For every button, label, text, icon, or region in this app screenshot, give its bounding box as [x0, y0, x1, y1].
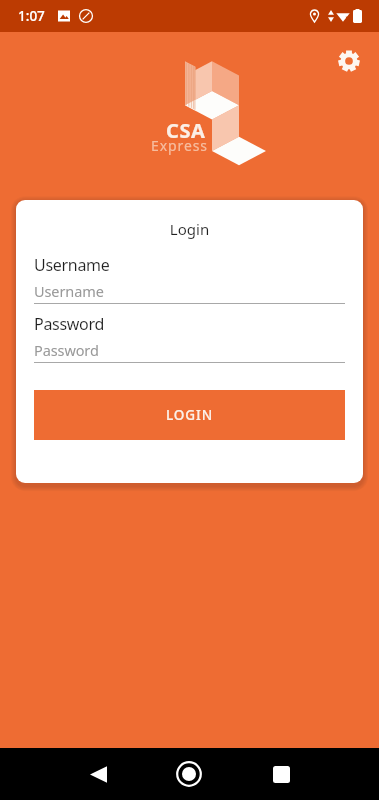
staticText: Username: [34, 254, 110, 276]
staticText: Login: [16, 219, 363, 239]
button[interactable]: Back: [74, 750, 122, 798]
staticText: Express: [151, 136, 208, 155]
staticText: CSA: [166, 117, 206, 144]
staticText: Username: [34, 281, 104, 301]
staticText: Password: [34, 313, 104, 335]
staticText: 1:07: [18, 7, 45, 25]
staticText: LOGIN: [166, 406, 214, 424]
button[interactable]: Settings: [327, 39, 371, 83]
button[interactable]: LOGIN: [34, 390, 345, 440]
button[interactable]: Home: [165, 750, 213, 798]
button[interactable]: Recent apps: [257, 750, 305, 798]
staticText: Password: [34, 340, 99, 360]
